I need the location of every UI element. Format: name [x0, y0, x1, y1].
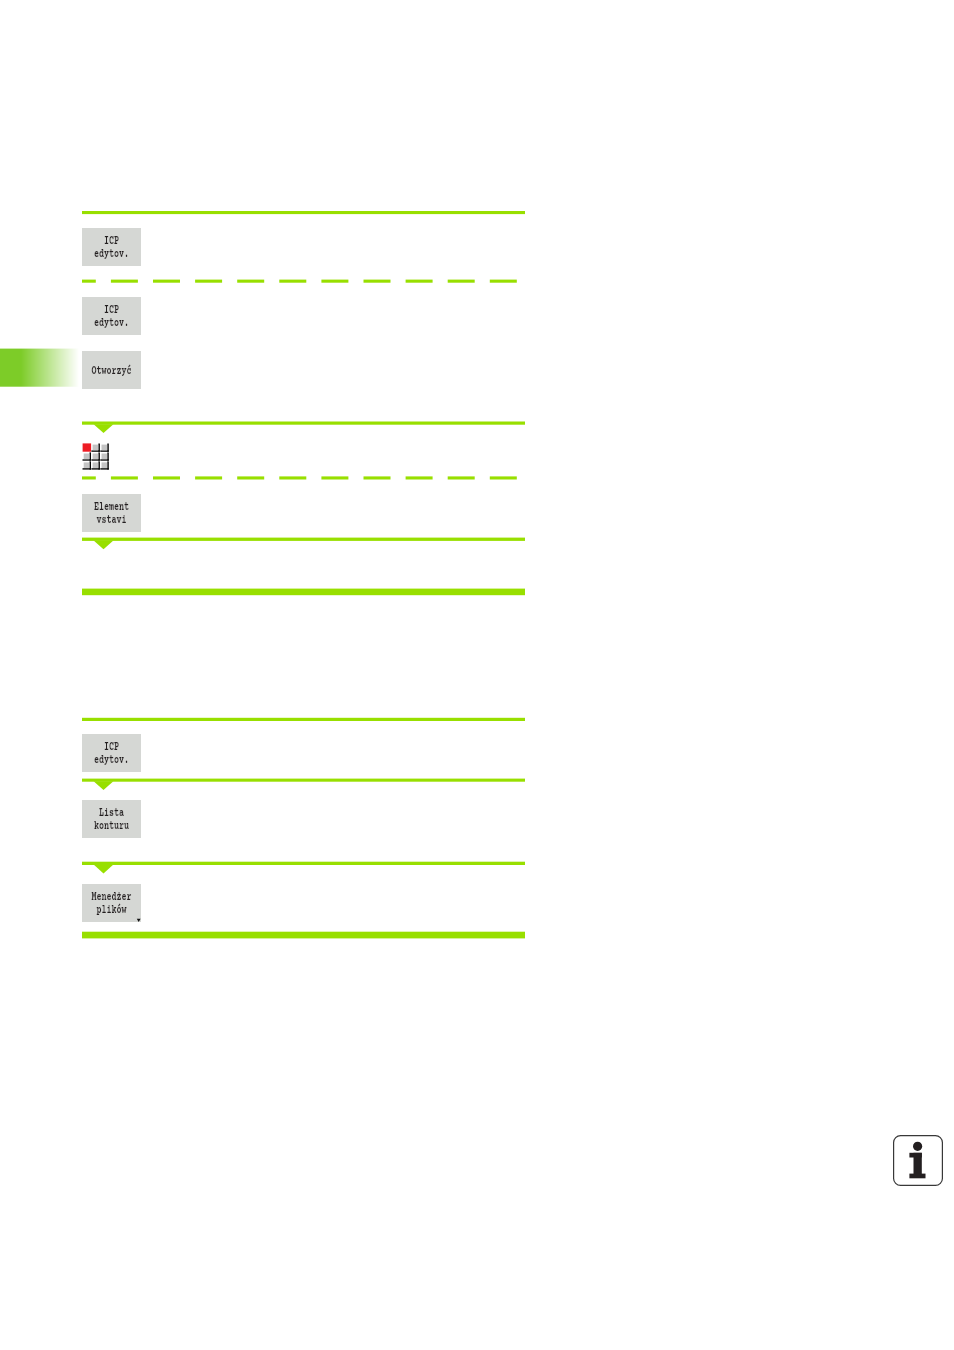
staticText: Otworzyć [91, 363, 132, 378]
staticText: Element vstavi [94, 499, 129, 528]
staticText: ICP edytov. [94, 302, 129, 331]
staticText: ICP edytov. [94, 739, 129, 768]
staticText: Menedżer plików [91, 889, 132, 918]
button[interactable]: Menedżer plików [82, 884, 141, 922]
button[interactable]: ICP edytov. [82, 734, 141, 772]
button[interactable]: Element vstavi [82, 494, 141, 532]
staticText: Lista konturu [94, 805, 129, 834]
button[interactable]: Lista konturu [82, 800, 141, 838]
button[interactable]: Otworzyć [82, 351, 141, 389]
staticText: ICP edytov. [94, 233, 129, 262]
button[interactable]: ICP edytov. [82, 297, 141, 335]
button[interactable]: ICP edytov. [82, 228, 141, 266]
button[interactable]: Information [893, 1135, 943, 1186]
